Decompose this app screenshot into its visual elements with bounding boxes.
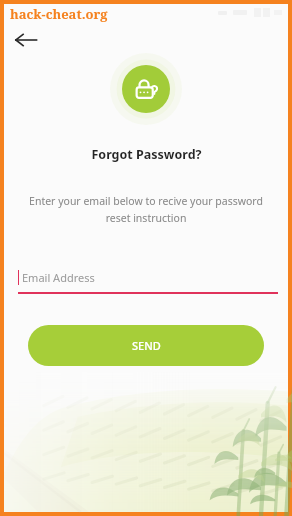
button[interactable]: Forgot password lock [122,65,170,113]
staticText: Email Address [22,270,95,285]
staticText: SEND [132,338,161,353]
button[interactable]: Email Address [18,270,278,294]
button[interactable]: SEND [28,325,264,366]
staticText: Forgot Password? [91,146,202,163]
staticText: hack-cheat.org [10,5,108,23]
button[interactable]: Back [8,22,44,58]
staticText: Enter your email below to recive your pa… [14,194,278,225]
